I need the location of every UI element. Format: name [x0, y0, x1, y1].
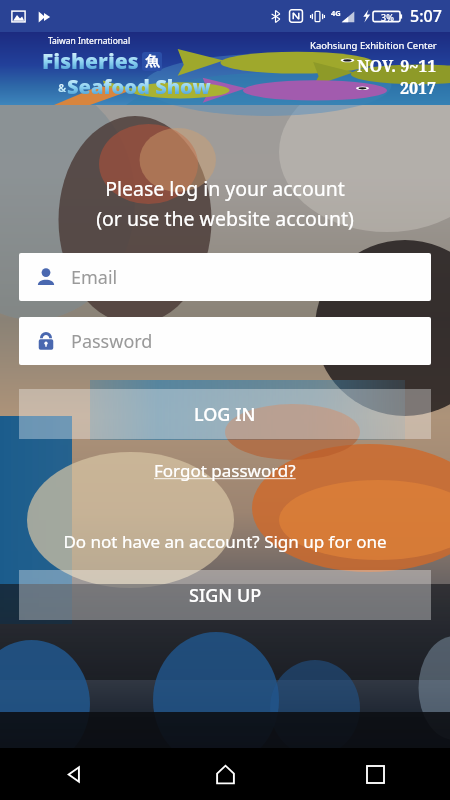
- staticText: Seafood Show: [67, 73, 211, 100]
- button[interactable]: Home: [150, 748, 300, 800]
- staticText: Fisheries: [42, 47, 139, 76]
- staticText: SIGN UP: [189, 583, 262, 608]
- staticText: (or use the website account): [0, 205, 450, 232]
- staticText: 2017: [400, 77, 437, 99]
- staticText: Taiwan International: [48, 35, 131, 47]
- staticText: Email: [71, 265, 118, 290]
- button[interactable]: Password: [19, 317, 431, 365]
- staticText: 4G: [331, 8, 341, 18]
- button[interactable]: LOG IN: [19, 389, 431, 439]
- staticText: Password: [71, 329, 153, 354]
- staticText: NOV. 9~11: [357, 55, 437, 77]
- button[interactable]: Email: [19, 253, 431, 301]
- staticText: 魚: [145, 53, 159, 71]
- staticText: Kaohsiung Exhibition Center: [310, 39, 437, 52]
- button[interactable]: Back: [0, 748, 150, 800]
- button[interactable]: SIGN UP: [19, 570, 431, 620]
- staticText: 5:07: [410, 5, 442, 27]
- staticText: LOG IN: [194, 402, 256, 427]
- button[interactable]: Do not have an account? Sign up for one: [0, 530, 450, 553]
- staticText: Please log in your account: [0, 175, 450, 202]
- staticText: &: [58, 80, 67, 95]
- staticText: 3%: [381, 11, 394, 23]
- button[interactable]: Recent apps: [300, 748, 450, 800]
- staticText: Forgot password?: [154, 459, 296, 482]
- button[interactable]: Forgot password?: [0, 459, 450, 482]
